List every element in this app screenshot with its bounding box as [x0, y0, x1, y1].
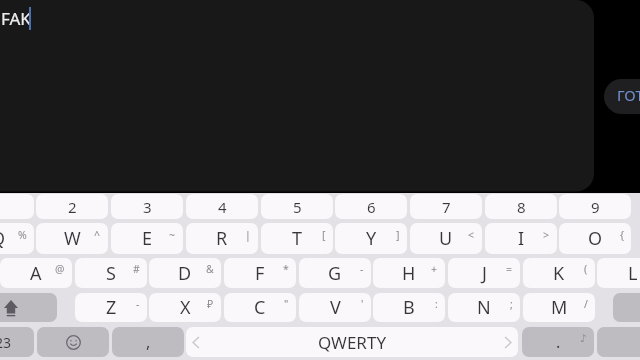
staticText: * [283, 262, 289, 276]
staticText: I [518, 226, 525, 251]
staticText: D [178, 261, 192, 286]
button[interactable]: ?123 [0, 327, 34, 357]
staticText: K [553, 261, 565, 286]
staticText: ( [584, 262, 588, 276]
staticText: ?123 [0, 333, 12, 352]
staticText: G [328, 261, 342, 286]
button[interactable]: S [75, 258, 147, 288]
staticText: F [255, 261, 265, 286]
staticText: 7 [442, 197, 451, 217]
staticText: U [439, 226, 453, 251]
staticText: M [551, 295, 568, 320]
staticText: A [30, 261, 42, 286]
staticText: % [18, 228, 27, 242]
staticText: ] [396, 228, 400, 242]
button[interactable]: 8 [485, 194, 557, 219]
button[interactable]: I [485, 223, 557, 254]
button[interactable]: E [111, 223, 183, 254]
staticText: T [292, 226, 303, 251]
button[interactable]: G [299, 258, 371, 288]
staticText: - [360, 262, 364, 276]
staticText: FAK [1, 7, 31, 30]
button[interactable]: O [559, 223, 631, 254]
button[interactable]: R [186, 223, 258, 254]
staticText: | [245, 228, 251, 242]
staticText: " [284, 297, 289, 311]
staticText: ♪ [580, 332, 587, 344]
button[interactable]: N [448, 293, 520, 322]
staticText: [ [322, 228, 326, 242]
staticText: < [468, 228, 475, 242]
button[interactable]: 3 [111, 194, 183, 219]
staticText: N [477, 295, 491, 320]
button[interactable]: Backspace [613, 293, 640, 322]
staticText: , [146, 331, 151, 353]
button[interactable]: 9 [559, 194, 631, 219]
staticText: 6 [367, 197, 376, 217]
staticText: Q [0, 226, 6, 251]
staticText: R [216, 226, 228, 251]
button[interactable]: M [523, 293, 595, 322]
button[interactable]: D [149, 258, 221, 288]
staticText: H [402, 261, 416, 286]
staticText: ' [361, 297, 364, 311]
button[interactable]: V [299, 293, 371, 322]
button[interactable]: A [0, 258, 72, 288]
staticText: 8 [517, 197, 526, 217]
button[interactable]: 6 [335, 194, 407, 219]
button[interactable]: 2 [36, 194, 108, 219]
staticText: X [180, 295, 191, 320]
staticText: ГОТОВО [617, 85, 640, 105]
button[interactable]: , [112, 327, 184, 357]
button[interactable]: 4 [186, 194, 258, 219]
staticText: > [543, 228, 550, 242]
staticText: ^ [94, 228, 101, 242]
button[interactable]: F [224, 258, 296, 288]
button[interactable]: U [410, 223, 482, 254]
staticText: ~ [169, 228, 176, 242]
staticText: 2 [68, 197, 77, 217]
button[interactable]: Emoji [37, 327, 109, 357]
button[interactable]: C [224, 293, 296, 322]
staticText: + [431, 262, 438, 276]
staticText: 5 [293, 197, 302, 217]
button[interactable]: Q [0, 223, 34, 254]
button[interactable]: ГОТОВО [604, 79, 640, 114]
button[interactable]: K [523, 258, 595, 288]
staticText: O [588, 226, 603, 251]
staticText: @ [55, 262, 65, 276]
staticText: W [64, 226, 81, 251]
staticText: B [403, 295, 415, 320]
button[interactable]: T [261, 223, 333, 254]
staticText: # [133, 262, 140, 276]
button[interactable]: 7 [410, 194, 482, 219]
staticText: C [254, 295, 266, 320]
button[interactable]: H [373, 258, 445, 288]
button[interactable]: W [36, 223, 108, 254]
staticText: QWERTY [318, 331, 387, 354]
staticText: / [584, 297, 588, 311]
button[interactable]: QWERTY [186, 327, 518, 357]
button[interactable]: Z [75, 293, 147, 322]
button[interactable]: Y [335, 223, 407, 254]
staticText: : [435, 297, 438, 311]
staticText: 3 [143, 197, 152, 217]
button[interactable]: Shift [0, 293, 57, 322]
staticText: J [482, 261, 487, 286]
staticText: Z [106, 295, 117, 320]
staticText: - [136, 297, 140, 311]
staticText: E [142, 226, 153, 251]
button[interactable]: 5 [261, 194, 333, 219]
staticText: { [620, 228, 624, 242]
button[interactable]: . [522, 327, 594, 357]
button[interactable]: L [597, 258, 640, 288]
button[interactable]: X [149, 293, 221, 322]
staticText: 4 [218, 197, 227, 217]
button[interactable]: B [373, 293, 445, 322]
staticText: Y [366, 226, 377, 251]
button[interactable]: Enter [597, 327, 640, 357]
button[interactable]: 1 [0, 194, 34, 219]
staticText: S [106, 261, 116, 286]
button[interactable]: J [448, 258, 520, 288]
